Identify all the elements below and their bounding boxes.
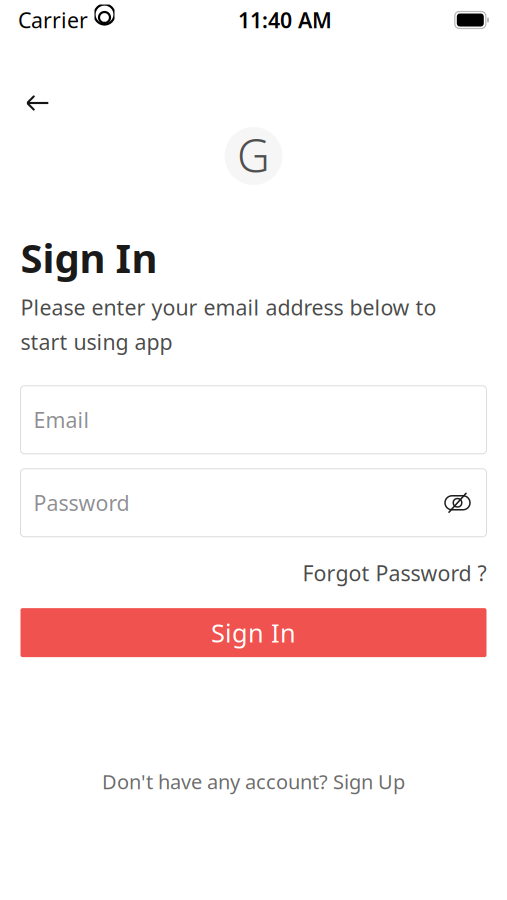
staticText: Email	[33, 406, 89, 434]
button[interactable]: Back	[16, 81, 60, 125]
button[interactable]: Don't have any account? Sign Up	[90, 760, 417, 803]
staticText: Carrier	[18, 6, 88, 34]
staticText: Don't have any account? Sign Up	[102, 768, 405, 795]
button[interactable]: Sign In	[20, 608, 486, 657]
staticText: 11:40 AM	[238, 6, 332, 34]
staticText: Forgot Password ?	[302, 559, 486, 587]
staticText: Sign In	[211, 616, 296, 649]
button[interactable]: Show password	[440, 486, 474, 520]
staticText: Sign In	[20, 231, 157, 284]
staticText: Please enter your email address below to…	[20, 293, 436, 356]
staticText: Password	[33, 489, 129, 517]
button[interactable]: Forgot Password ?	[302, 553, 486, 593]
staticText: G	[237, 125, 270, 185]
